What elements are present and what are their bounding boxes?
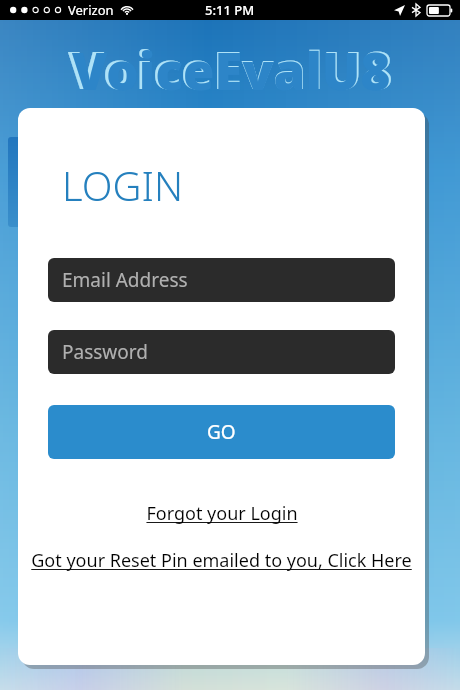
button[interactable]: Password xyxy=(48,330,395,374)
staticText: GO xyxy=(207,419,236,445)
staticText: LOGIN xyxy=(62,158,184,212)
staticText: VoiceEvalU8 xyxy=(68,33,393,104)
staticText: Got your Reset Pin emailed to you, Click… xyxy=(31,548,412,573)
staticText: Forgot your Login xyxy=(146,501,298,526)
staticText: Password xyxy=(62,339,148,365)
button[interactable]: GO xyxy=(48,405,395,459)
staticText: VoiceEvalU8 xyxy=(72,35,391,104)
button[interactable]: Email Address xyxy=(48,258,395,302)
staticText: 5:11 PM xyxy=(205,1,255,19)
button[interactable]: Got your Reset Pin emailed to you, Click… xyxy=(26,548,417,573)
button[interactable]: Forgot your Login xyxy=(26,501,417,526)
staticText: Email Address xyxy=(62,267,188,293)
staticText: Verizon xyxy=(68,1,114,19)
